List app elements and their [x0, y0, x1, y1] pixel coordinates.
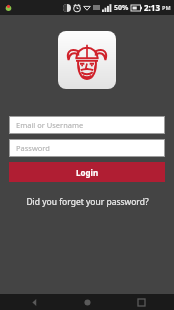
staticText: Password	[16, 143, 50, 153]
staticText: Email or Username	[16, 120, 84, 130]
button[interactable]: Login	[9, 162, 165, 182]
button[interactable]: Email or Username	[10, 117, 164, 133]
button[interactable]: Password	[10, 140, 164, 156]
button[interactable]: Recent apps	[121, 294, 161, 310]
staticText: 2:13	[144, 2, 160, 13]
staticText: Login	[76, 167, 99, 178]
staticText: PM	[162, 4, 171, 11]
button[interactable]: Did you forget your password?	[0, 193, 174, 211]
staticText: 50%	[114, 3, 129, 13]
button[interactable]: Back	[14, 294, 54, 310]
button[interactable]: Home	[67, 294, 107, 310]
staticText: Did you forget your password?	[26, 196, 149, 208]
